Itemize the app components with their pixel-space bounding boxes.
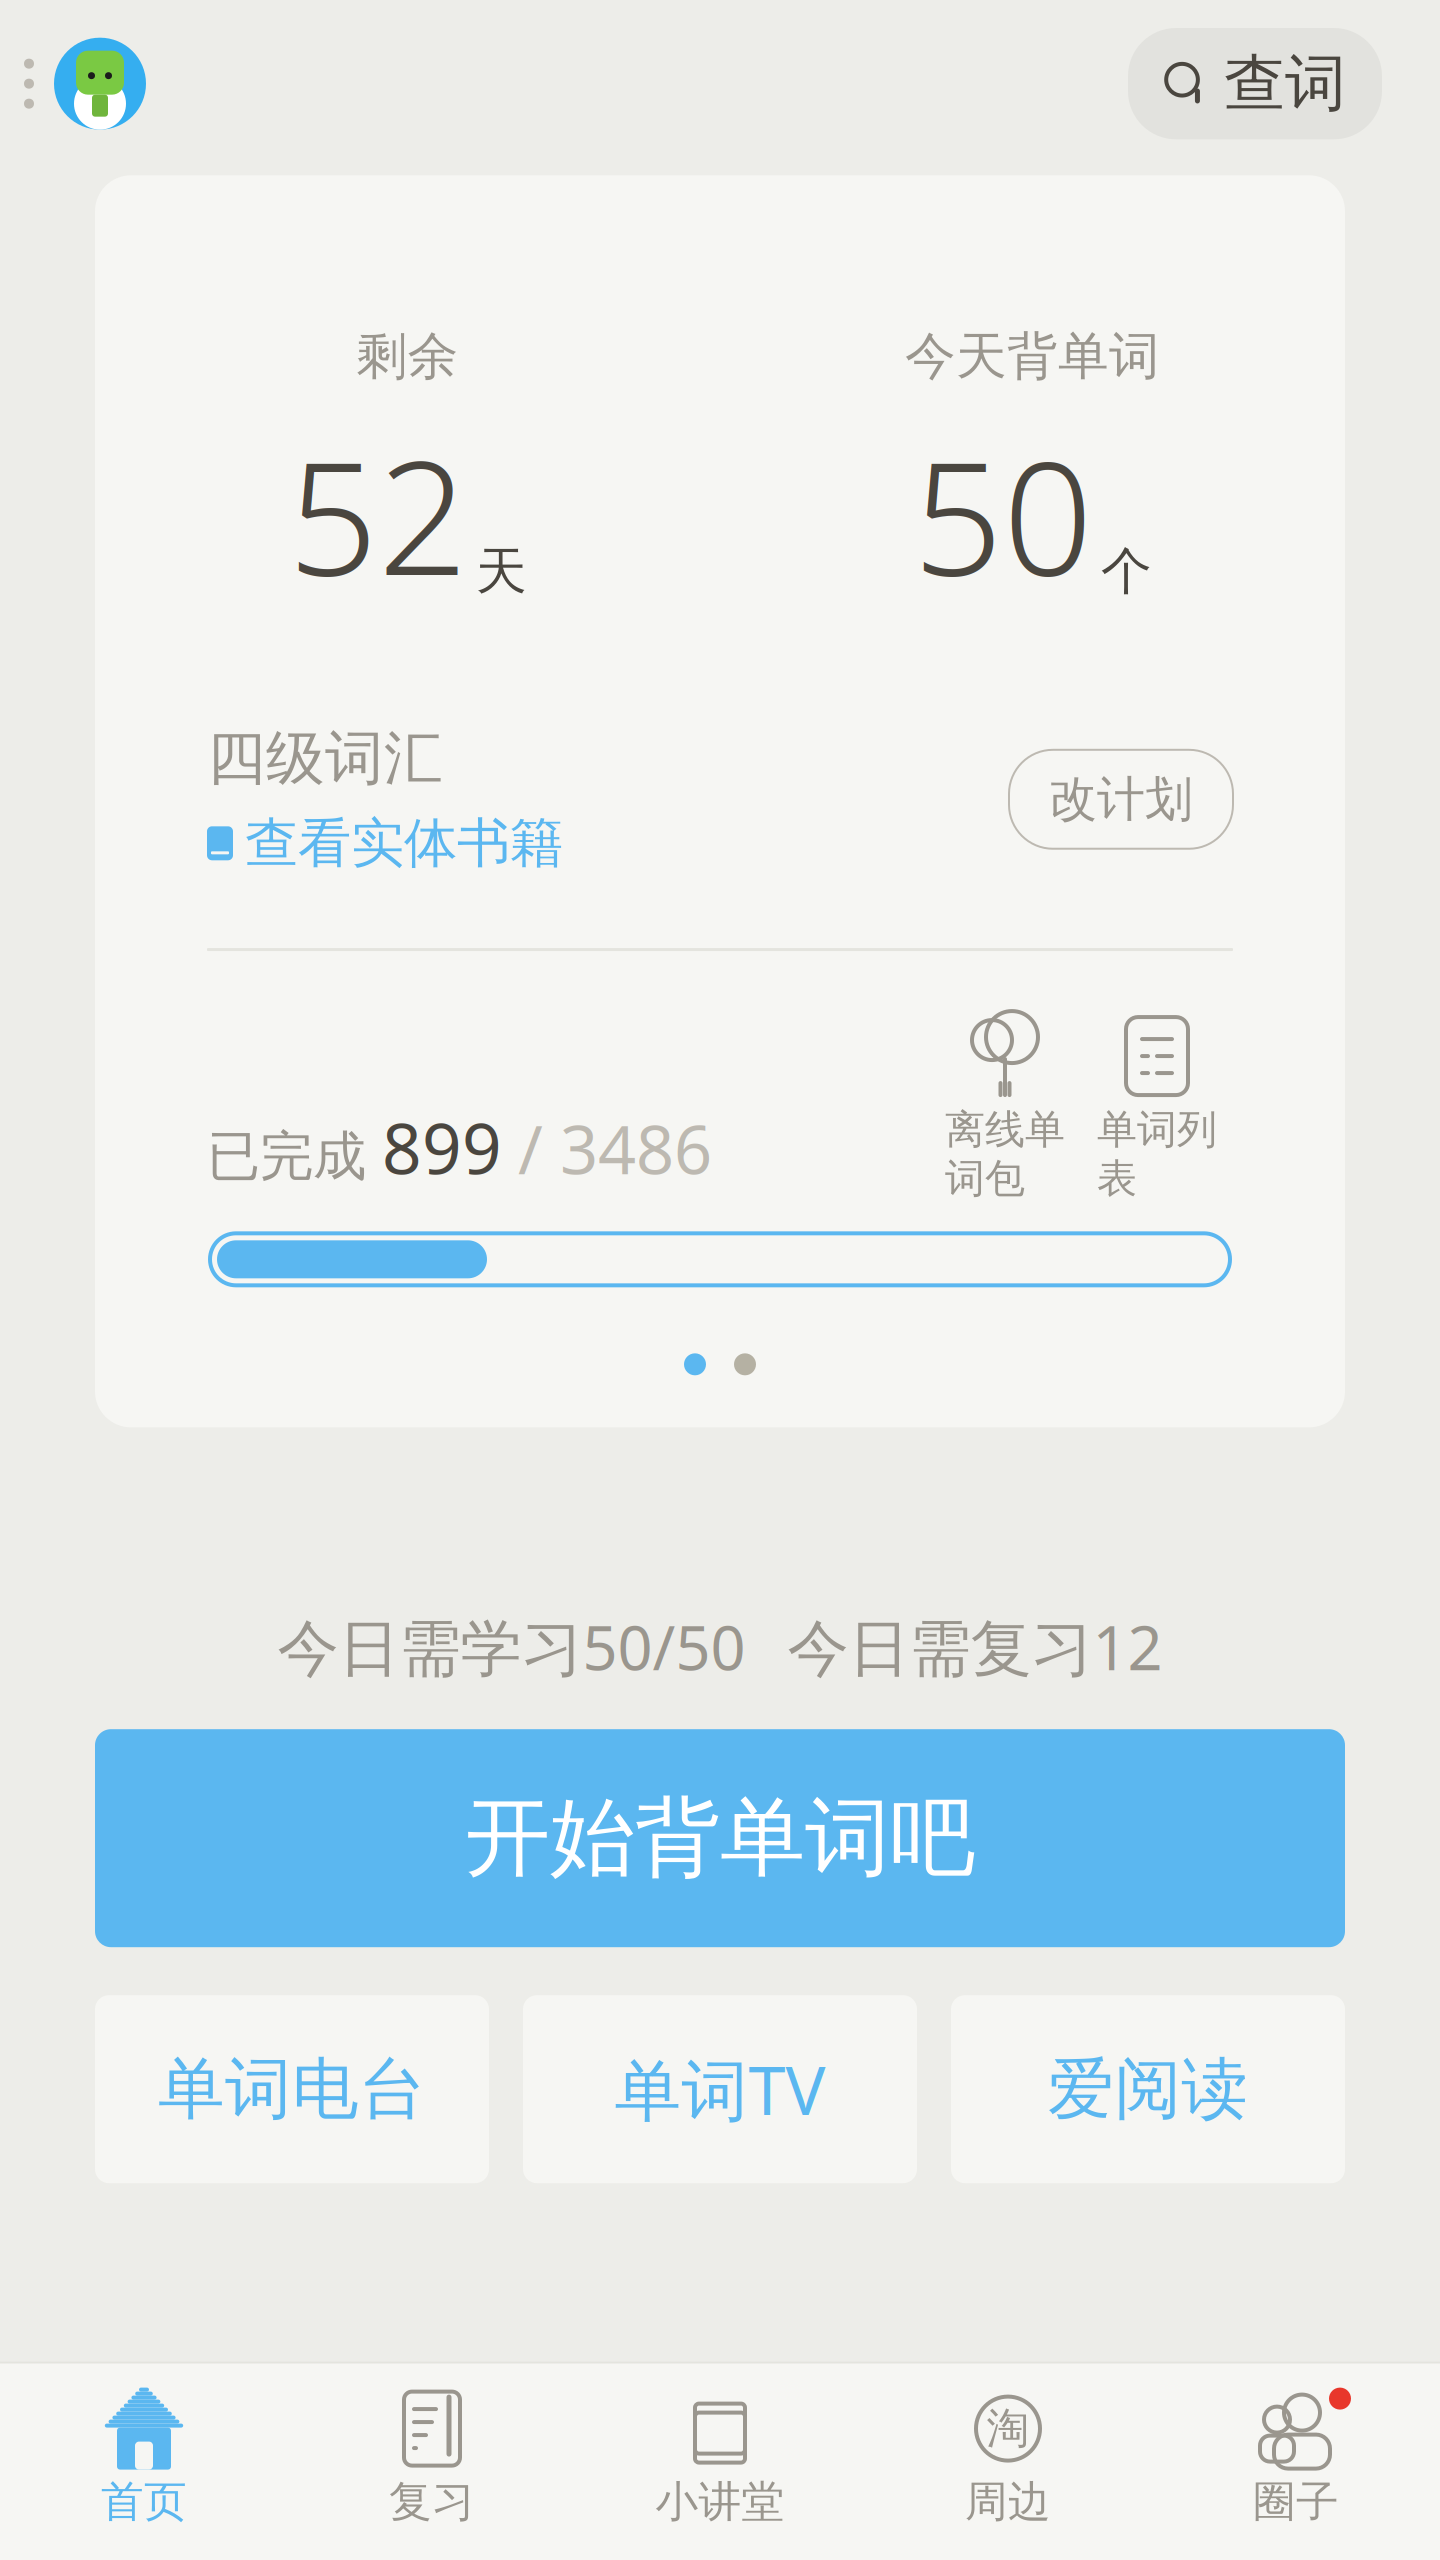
button[interactable]: 单词列表 xyxy=(1081,1013,1233,1203)
staticText: 今天背单词 xyxy=(905,325,1160,387)
button[interactable]: 首页 xyxy=(0,2378,288,2538)
staticText: 圈子 xyxy=(1253,2476,1339,2528)
staticText: 今日需复习12 xyxy=(787,1606,1162,1687)
staticText: 单词TV xyxy=(614,2045,825,2133)
staticText: / 3486 xyxy=(518,1104,712,1193)
staticText: 复习 xyxy=(389,2476,475,2528)
button[interactable]: 单词电台 xyxy=(95,1995,489,2183)
button[interactable]: 查看实体书籍 xyxy=(207,811,563,876)
staticText: 四级词汇 xyxy=(207,722,443,795)
staticText: 查词 xyxy=(1224,46,1346,121)
button[interactable]: 小讲堂 xyxy=(576,2378,864,2538)
staticText: 单词列表 xyxy=(1097,1105,1217,1203)
staticText: 单词电台 xyxy=(158,2048,426,2130)
button[interactable]: 复习 xyxy=(288,2378,576,2538)
staticText: 周边 xyxy=(965,2476,1051,2528)
button[interactable]: 淘 xyxy=(864,2378,1152,2538)
staticText: 爱阅读 xyxy=(1047,2048,1248,2130)
button[interactable]: 圈子 xyxy=(1152,2378,1440,2538)
staticText: 52 xyxy=(288,410,468,618)
staticText: 淘 xyxy=(986,2402,1029,2455)
button[interactable]: 离线单词包 xyxy=(929,1013,1081,1203)
staticText: 天 xyxy=(476,540,527,602)
staticText: 首页 xyxy=(101,2476,187,2528)
staticText: 查看实体书籍 xyxy=(245,811,563,876)
staticText: 离线单词包 xyxy=(945,1105,1065,1203)
button[interactable]: Profile xyxy=(0,30,146,138)
staticText: 今日需学习50/50 xyxy=(277,1606,745,1687)
staticText: 50 xyxy=(913,410,1093,618)
staticText: 个 xyxy=(1101,540,1152,602)
button[interactable]: 改计划 xyxy=(1009,750,1233,849)
button[interactable]: 单词TV xyxy=(523,1995,917,2183)
staticText: 小讲堂 xyxy=(655,2476,784,2528)
staticText: 已完成 xyxy=(207,1124,366,1189)
button[interactable]: 查词 xyxy=(1128,28,1382,139)
button[interactable]: 开始背单词吧 xyxy=(95,1729,1345,1947)
button[interactable]: 爱阅读 xyxy=(951,1995,1345,2183)
staticText: 改计划 xyxy=(1049,770,1193,829)
staticText: 开始背单词吧 xyxy=(465,1786,975,1891)
staticText: 899 xyxy=(382,1101,502,1193)
staticText: 剩余 xyxy=(356,325,458,387)
